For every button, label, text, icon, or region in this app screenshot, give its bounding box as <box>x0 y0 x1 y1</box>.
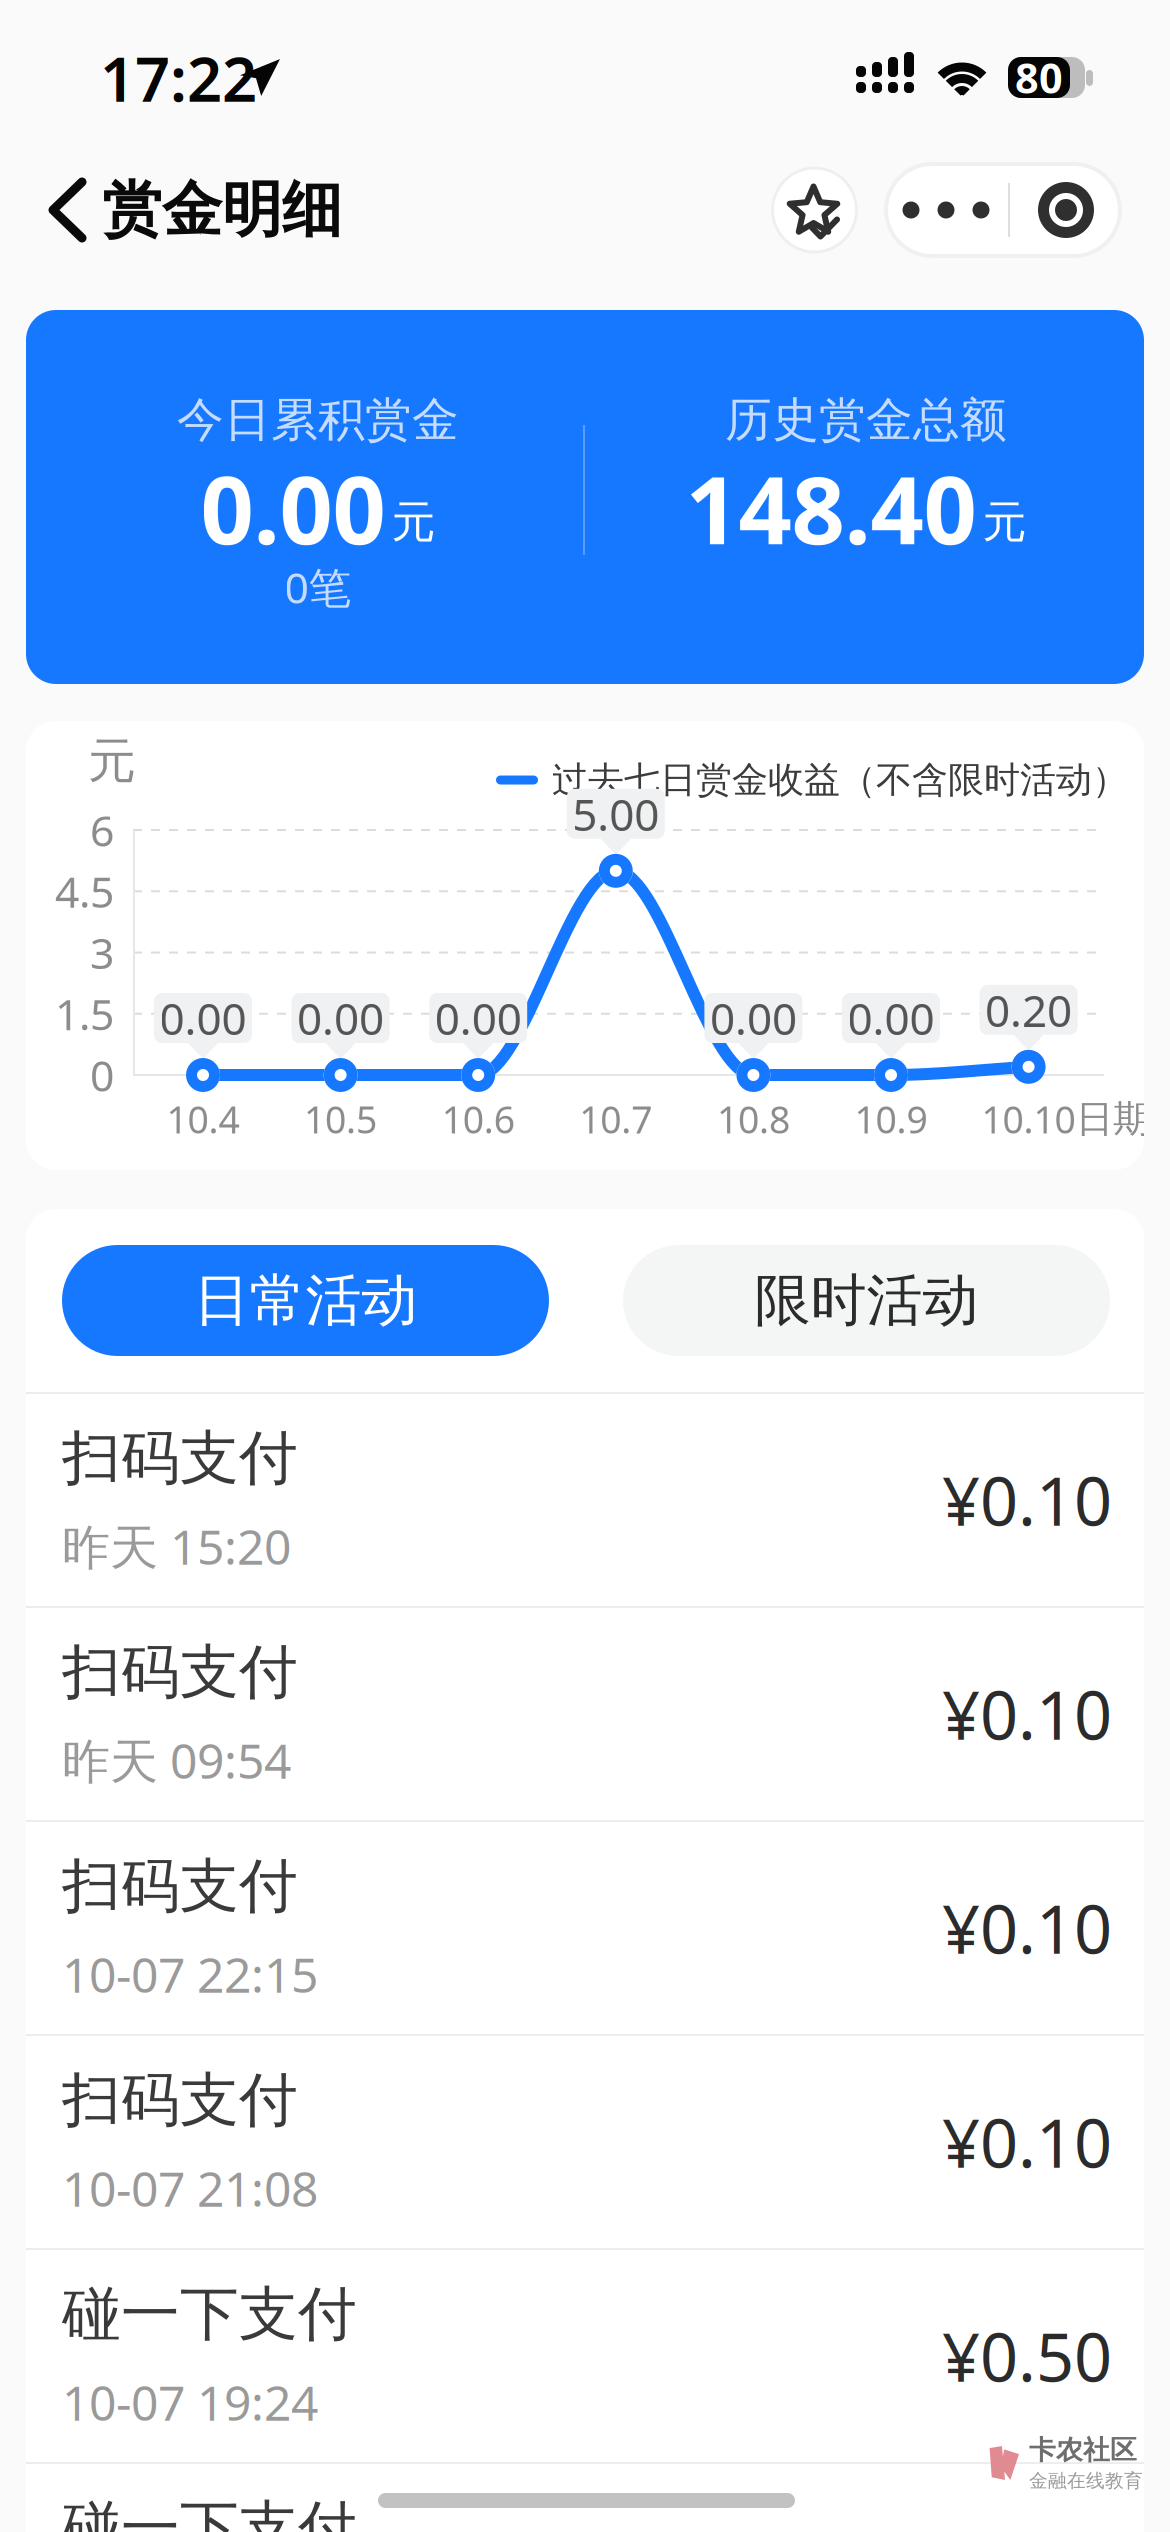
staticText: 今日累积赏金 <box>177 391 459 449</box>
staticText: 0 <box>90 1047 114 1103</box>
staticText: 卡农社区 <box>1029 2434 1137 2466</box>
staticText: 元 <box>391 495 435 549</box>
staticText: 元 <box>982 495 1026 549</box>
staticText: 10-07 19:24 <box>62 2370 318 2434</box>
button[interactable]: 扫码支付 <box>26 1608 1144 1820</box>
button[interactable]: 日常活动 <box>62 1245 549 1356</box>
button[interactable]: 扫码支付 <box>26 2036 1144 2248</box>
staticText: 赏金明细 <box>102 173 342 247</box>
button[interactable]: 扫码支付 <box>26 1394 1144 1606</box>
staticText: 0.00 <box>200 446 385 570</box>
staticText: 17:22 <box>100 37 257 119</box>
staticText: 0.00 <box>159 989 246 1047</box>
staticText: 碰一下支付 <box>62 2278 357 2350</box>
staticText: 0.00 <box>847 989 934 1047</box>
staticText: 日常活动 <box>193 1266 417 1335</box>
staticText: 10.9 <box>854 1094 927 1144</box>
staticText: 历史赏金总额 <box>725 391 1007 449</box>
button[interactable]: Back <box>0 150 102 270</box>
staticText: ¥0.50 <box>942 2312 1112 2400</box>
button[interactable]: More <box>884 164 1008 256</box>
staticText: 1.5 <box>55 985 114 1042</box>
staticText: ¥0.10 <box>942 1456 1112 1544</box>
button[interactable]: 扫码支付 <box>26 1822 1144 2034</box>
staticText: 6 <box>90 802 114 858</box>
staticText: 4.5 <box>55 863 114 920</box>
staticText: 金融在线教育 <box>1029 2469 1143 2492</box>
staticText: 0.00 <box>435 989 522 1047</box>
staticText: 5.00 <box>572 785 659 843</box>
staticText: 148.40 <box>685 446 976 570</box>
staticText: 3 <box>90 924 114 981</box>
staticText: 10-07 22:15 <box>62 1942 318 2006</box>
button[interactable]: Close <box>1010 164 1122 256</box>
staticText: 扫码支付 <box>62 1636 298 1708</box>
staticText: ¥0.10 <box>942 1670 1112 1758</box>
staticText: 80 <box>1015 50 1063 105</box>
staticText: 10.5 <box>304 1094 377 1144</box>
button[interactable]: 碰一下支付 <box>26 2250 1144 2462</box>
staticText: 扫码支付 <box>62 2064 298 2136</box>
staticText: 10.7 <box>579 1094 652 1144</box>
staticText: 昨天 09:54 <box>62 1728 291 1792</box>
staticText: 10.6 <box>442 1094 515 1144</box>
staticText: 0.00 <box>297 989 384 1047</box>
staticText: 10.8 <box>717 1094 790 1144</box>
staticText: 0笔 <box>284 559 351 615</box>
staticText: 过去七日赏金收益（不含限时活动） <box>552 758 1128 802</box>
staticText: 扫码支付 <box>62 1850 298 1922</box>
button[interactable]: 碰一下支付 <box>26 2464 1144 2532</box>
staticText: 元 <box>88 731 136 790</box>
staticText: 0.20 <box>985 981 1072 1039</box>
staticText: 限时活动 <box>754 1266 978 1335</box>
staticText: 日期 <box>1076 1096 1150 1142</box>
staticText: ¥0.10 <box>942 2098 1112 2186</box>
staticText: 10.4 <box>166 1094 239 1144</box>
staticText: 10-07 21:08 <box>62 2156 318 2220</box>
staticText: 扫码支付 <box>62 1422 298 1494</box>
button[interactable]: Favorite <box>771 166 858 253</box>
staticText: 0.00 <box>710 989 797 1047</box>
staticText: 碰一下支付 <box>62 2492 357 2532</box>
button[interactable]: 限时活动 <box>623 1245 1110 1356</box>
staticText: 10.10 <box>982 1094 1076 1144</box>
staticText: ¥0.10 <box>942 1884 1112 1972</box>
staticText: 昨天 15:20 <box>62 1514 291 1578</box>
